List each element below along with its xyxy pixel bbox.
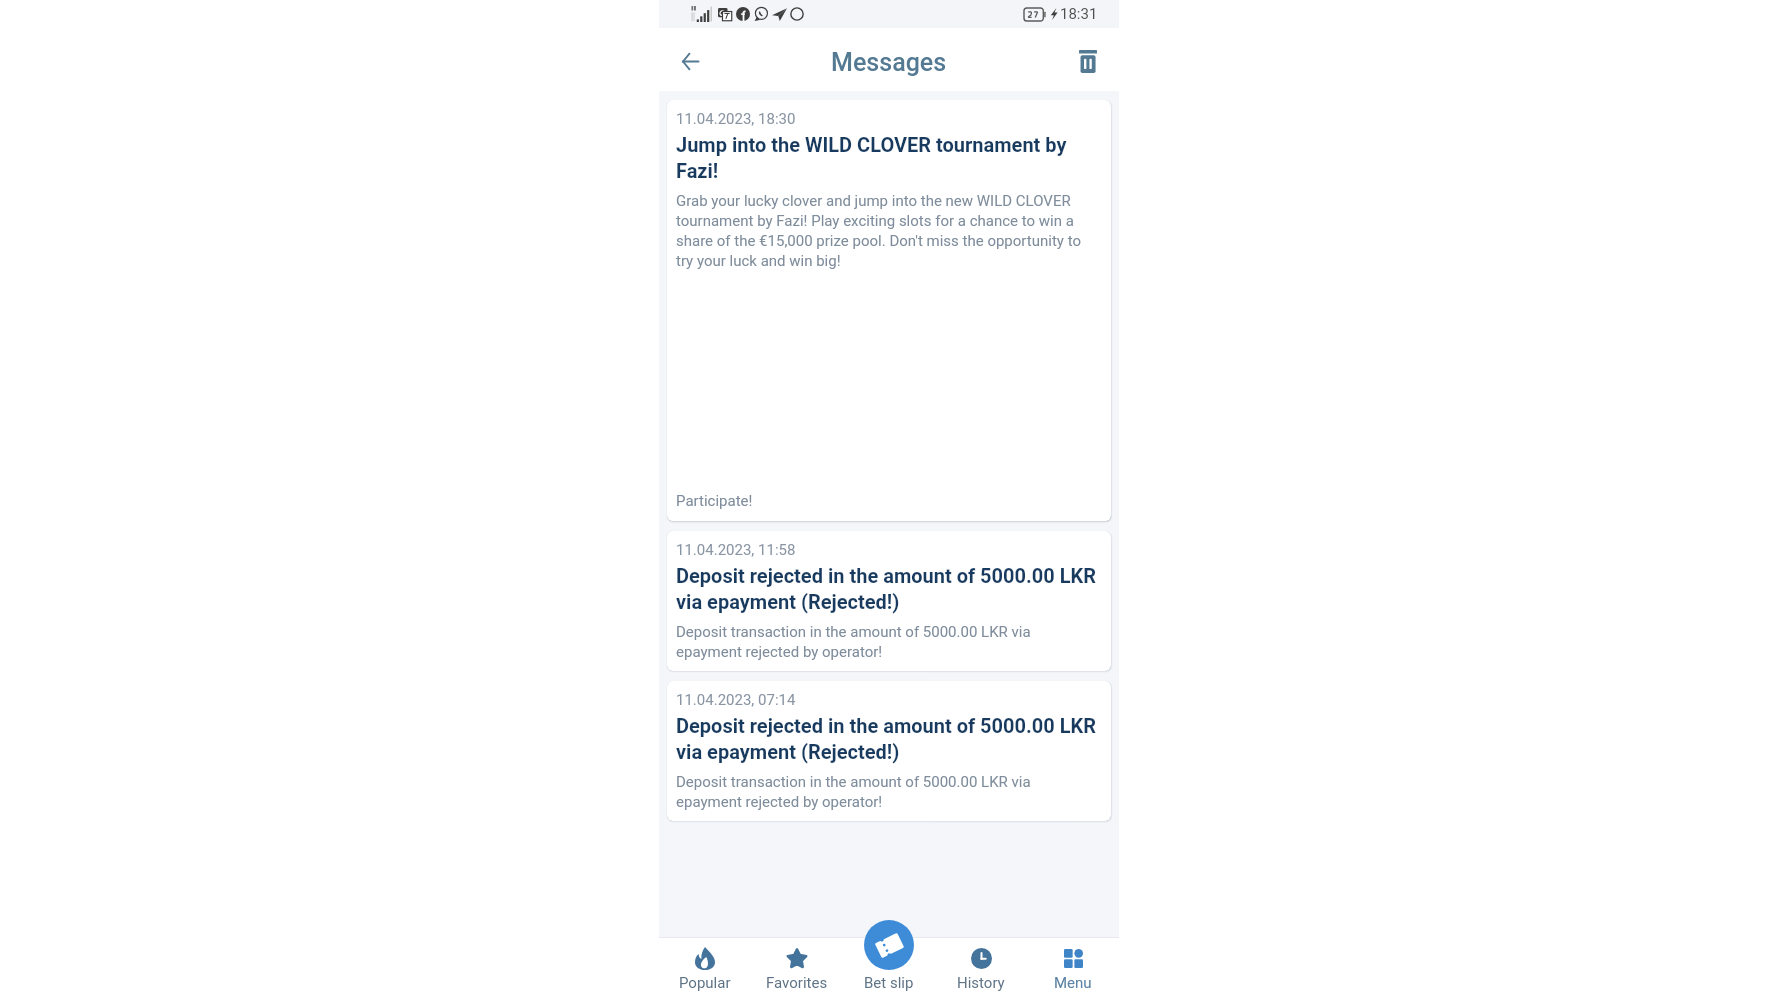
- button[interactable]: Menu: [1027, 937, 1119, 1000]
- button[interactable]: Delete messages: [1068, 41, 1108, 81]
- staticText: 11.04.2023, 18:30: [676, 110, 796, 128]
- staticText: Bet slip: [864, 974, 914, 992]
- staticText: Deposit rejected in the amount of 5000.0…: [676, 714, 1100, 763]
- button[interactable]: Bet slip: [843, 937, 935, 1000]
- button[interactable]: 11.04.2023, 11:58: [667, 531, 1111, 671]
- staticText: 18:31: [1060, 5, 1098, 23]
- button[interactable]: Bet slip: [864, 920, 914, 970]
- staticText: Menu: [1054, 974, 1092, 992]
- staticText: Jump into the WILD CLOVER tournament by …: [676, 133, 1100, 182]
- button[interactable]: History: [935, 937, 1027, 1000]
- staticText: 11.04.2023, 11:58: [676, 541, 796, 559]
- staticText: History: [957, 974, 1005, 992]
- staticText: Grab your lucky clover and jump into the…: [676, 192, 1100, 269]
- staticText: Participate!: [676, 492, 753, 510]
- staticText: Deposit transaction in the amount of 500…: [676, 773, 1100, 810]
- staticText: Favorites: [766, 974, 828, 992]
- button[interactable]: 11.04.2023, 07:14: [667, 681, 1111, 821]
- staticText: Messages: [831, 48, 947, 77]
- button[interactable]: Back: [670, 41, 710, 81]
- staticText: Deposit rejected in the amount of 5000.0…: [676, 564, 1100, 613]
- staticText: Popular: [679, 974, 731, 992]
- staticText: 11.04.2023, 07:14: [676, 691, 796, 709]
- button[interactable]: Popular: [659, 937, 751, 1000]
- staticText: Deposit transaction in the amount of 500…: [676, 623, 1100, 660]
- button[interactable]: Favorites: [751, 937, 843, 1000]
- button[interactable]: 11.04.2023, 18:30: [667, 100, 1111, 521]
